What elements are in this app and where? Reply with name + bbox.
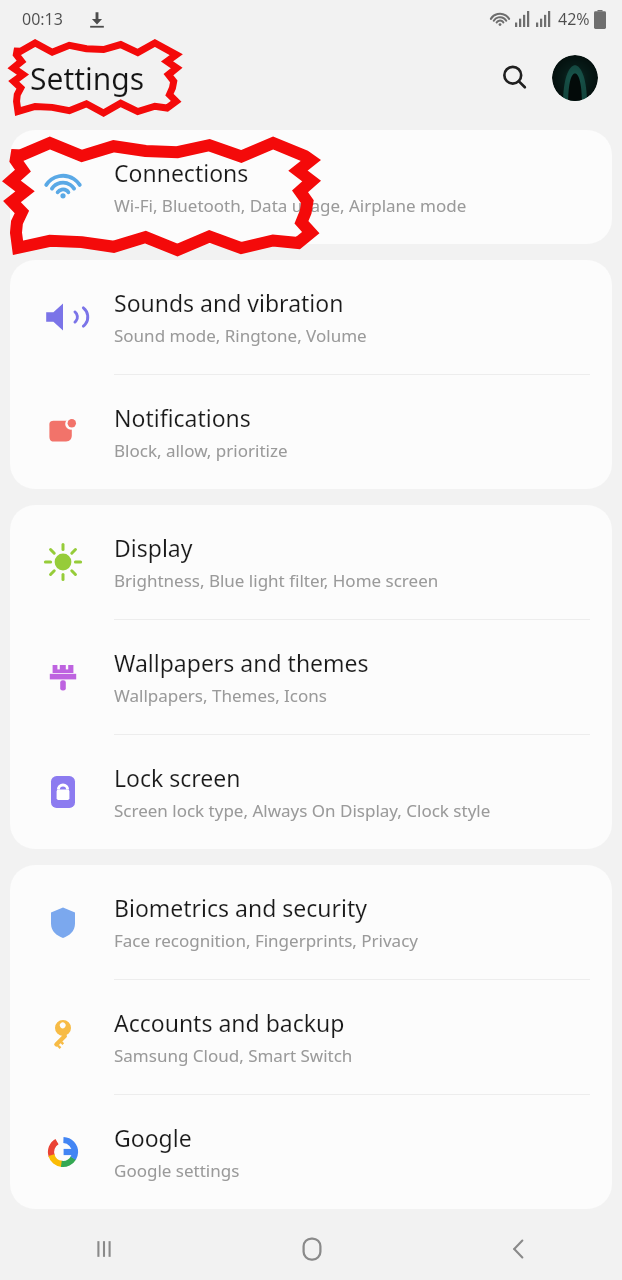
- staticText: Samsung Cloud, Smart Switch: [114, 1044, 353, 1067]
- button[interactable]: Connections: [10, 130, 612, 244]
- button[interactable]: Recent apps: [0, 1218, 208, 1280]
- button[interactable]: Display: [10, 505, 612, 619]
- button[interactable]: Home: [208, 1218, 415, 1280]
- staticText: Brightness, Blue light filter, Home scre…: [114, 569, 439, 592]
- staticText: Accounts and backup: [114, 1007, 345, 1038]
- button[interactable]: Wallpapers and themes: [10, 620, 612, 734]
- staticText: Settings: [30, 58, 145, 99]
- staticText: Display: [114, 532, 193, 563]
- button[interactable]: Sounds and vibration: [10, 260, 612, 374]
- button[interactable]: Account profile: [552, 55, 598, 101]
- staticText: Screen lock type, Always On Display, Clo…: [114, 799, 491, 822]
- button[interactable]: Lock screen: [10, 735, 612, 849]
- button[interactable]: Back: [415, 1218, 622, 1280]
- staticText: Sounds and vibration: [114, 287, 344, 318]
- button[interactable]: Biometrics and security: [10, 865, 612, 979]
- button[interactable]: Google: [10, 1095, 612, 1209]
- staticText: Block, allow, prioritize: [114, 439, 288, 462]
- staticText: Wallpapers, Themes, Icons: [114, 684, 327, 707]
- button[interactable]: Accounts and backup: [10, 980, 612, 1094]
- staticText: 42%: [558, 8, 590, 30]
- staticText: Lock screen: [114, 762, 241, 793]
- staticText: Face recognition, Fingerprints, Privacy: [114, 929, 418, 952]
- staticText: Google settings: [114, 1159, 240, 1182]
- staticText: Sound mode, Ringtone, Volume: [114, 324, 367, 347]
- staticText: Google: [114, 1122, 192, 1153]
- staticText: Connections: [114, 157, 249, 188]
- button[interactable]: Search settings: [492, 55, 538, 101]
- staticText: Wallpapers and themes: [114, 647, 369, 678]
- staticText: Biometrics and security: [114, 892, 368, 923]
- button[interactable]: Notifications: [10, 375, 612, 489]
- staticText: Notifications: [114, 402, 251, 433]
- staticText: 00:13: [22, 8, 63, 30]
- staticText: Wi-Fi, Bluetooth, Data usage, Airplane m…: [114, 194, 467, 217]
